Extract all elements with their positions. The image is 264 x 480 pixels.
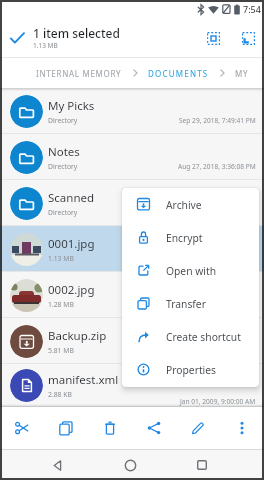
button[interactable]: Backup.zip <box>0 318 264 364</box>
button[interactable] <box>124 459 136 471</box>
staticText: 1.13 MB <box>48 254 74 263</box>
button[interactable] <box>202 27 224 49</box>
button[interactable]: INTERNAL MEMORY <box>36 68 122 79</box>
staticText: My Picks <box>48 98 95 114</box>
button[interactable] <box>51 459 63 471</box>
staticText: 5.81 MB <box>48 346 74 355</box>
staticText: Sep 29, 2018, 7:49:41 PM <box>179 116 256 125</box>
staticText: MY <box>235 68 249 79</box>
staticText: 7:54 <box>243 3 261 15</box>
button[interactable] <box>220 407 264 449</box>
button[interactable]: 1 item selected <box>0 18 264 57</box>
staticText: Notes <box>48 144 80 160</box>
button[interactable]: DOCUMENTS <box>148 68 209 79</box>
staticText: manifest.xml <box>48 372 119 388</box>
staticText: Backup.zip <box>48 328 107 344</box>
staticText: Directory <box>48 162 78 171</box>
staticText: Encrypt <box>166 231 203 245</box>
staticText: Scanned <box>48 190 95 206</box>
staticText: INTERNAL MEMORY <box>36 68 122 79</box>
button[interactable]: Archive <box>122 188 259 221</box>
staticText: Open with <box>166 264 217 278</box>
staticText: 0001.jpg <box>48 236 95 252</box>
button[interactable]: Create shortcut <box>122 320 259 353</box>
staticText: Directory <box>48 208 78 217</box>
staticText: 1.13 MB <box>33 41 58 50</box>
button[interactable] <box>0 407 44 449</box>
staticText: Jul 10, 2018, 1:05:11 PM <box>183 208 256 217</box>
button[interactable] <box>196 459 208 471</box>
button[interactable]: Open with <box>122 254 259 287</box>
button[interactable]: 0001.jpg <box>0 226 264 272</box>
button[interactable]: manifest.xml <box>0 364 264 407</box>
button[interactable]: MY <box>235 68 249 79</box>
staticText: Transfer <box>166 297 206 311</box>
staticText: 1.28 MB <box>48 300 74 309</box>
staticText: Sep 29, 2018, 7:50:02 PM <box>179 300 256 309</box>
button[interactable] <box>44 407 88 449</box>
staticText: 2.88 KB <box>48 390 72 399</box>
button[interactable] <box>237 27 259 49</box>
staticText: Properties <box>166 363 217 377</box>
button[interactable] <box>88 407 132 449</box>
staticText: Archive <box>166 198 202 212</box>
staticText: Create shortcut <box>166 330 241 344</box>
button[interactable]: Notes <box>0 134 264 180</box>
button[interactable]: My Picks <box>0 88 264 134</box>
staticText: Jan 01, 2009, 9:00:00 AM <box>180 397 256 406</box>
staticText: 1 item selected <box>33 25 120 41</box>
button[interactable]: Properties <box>122 353 259 386</box>
button[interactable]: Transfer <box>122 287 259 320</box>
staticText: Aug 27, 2018, 3:36:08 PM <box>178 162 256 171</box>
staticText: 0002.jpg <box>48 282 95 298</box>
button[interactable] <box>176 407 220 449</box>
button[interactable]: Encrypt <box>122 221 259 254</box>
button[interactable] <box>132 407 176 449</box>
staticText: DOCUMENTS <box>148 68 209 79</box>
staticText: Directory <box>48 116 78 125</box>
button[interactable]: Scanned <box>0 180 264 226</box>
button[interactable]: 0002.jpg <box>0 272 264 318</box>
